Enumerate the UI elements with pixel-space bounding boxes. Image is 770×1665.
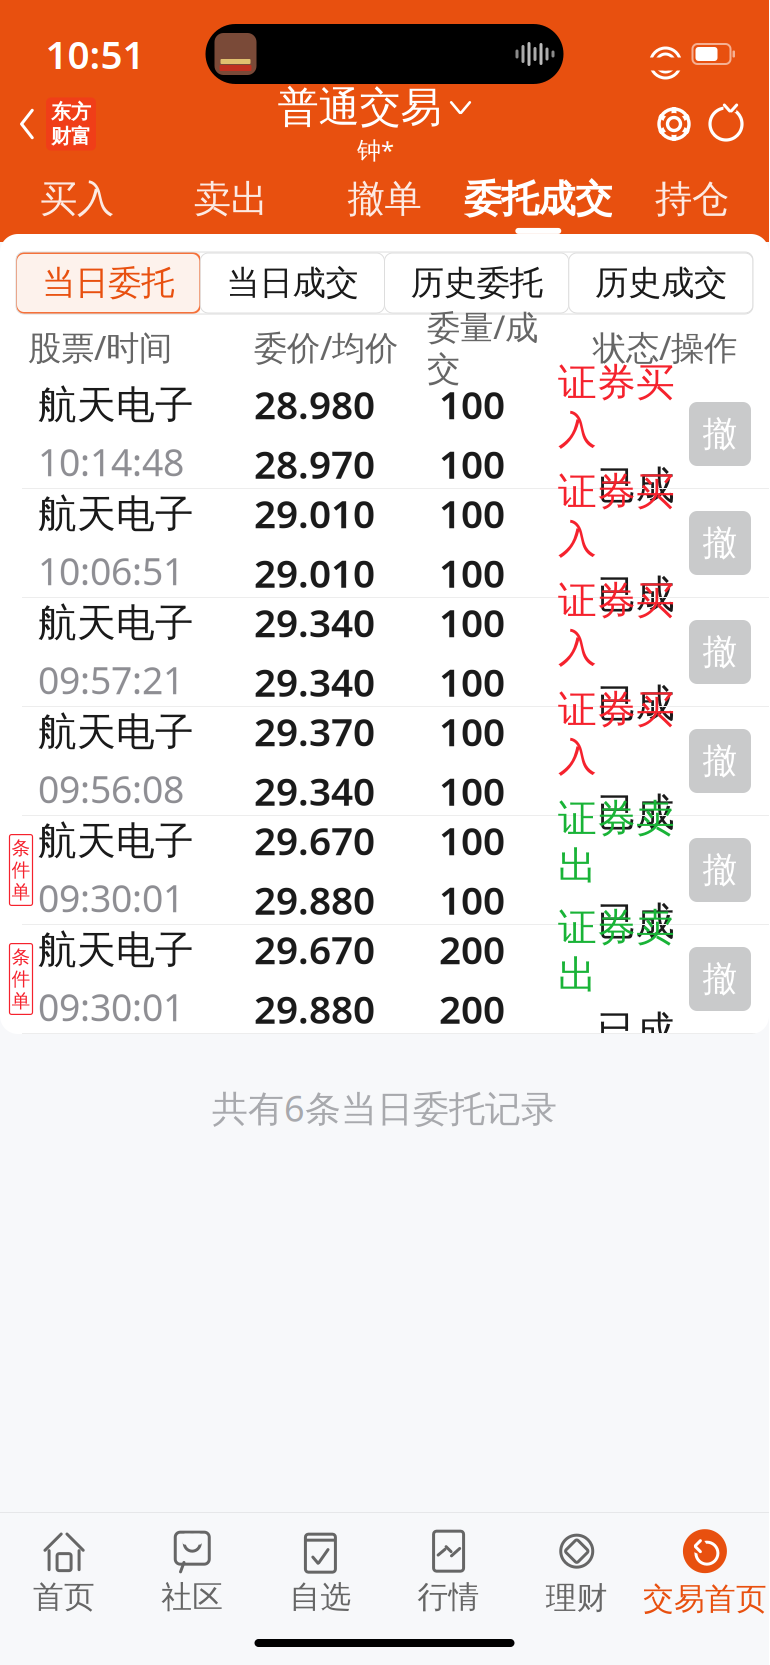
button[interactable]: 撤 bbox=[689, 729, 751, 793]
staticText: 已成 bbox=[597, 680, 675, 727]
button[interactable]: 航天电子 bbox=[0, 707, 769, 816]
button[interactable]: 普通交易 bbox=[269, 82, 481, 166]
staticText: 10:06:51 bbox=[38, 546, 184, 596]
staticText: 当日成交 bbox=[226, 262, 358, 303]
staticText: 东方 bbox=[51, 99, 91, 124]
staticText: 钟* bbox=[357, 134, 394, 166]
button[interactable]: 条 bbox=[0, 925, 769, 1034]
staticText: 29.670 bbox=[254, 815, 375, 866]
staticText: 共有6条当日委托记录 bbox=[212, 1084, 557, 1132]
staticText: 100 bbox=[439, 379, 505, 430]
button[interactable]: 撤 bbox=[689, 620, 751, 684]
button[interactable]: 撤 bbox=[689, 838, 751, 902]
staticText: 100 bbox=[439, 488, 505, 539]
staticText: 10:51 bbox=[45, 28, 144, 80]
staticText: 普通交易 bbox=[277, 82, 441, 133]
staticText: 已成 bbox=[597, 571, 675, 618]
staticText: 09:57:21 bbox=[38, 655, 184, 705]
staticText: 航天电子 bbox=[38, 599, 194, 647]
staticText: 状态/操作 bbox=[593, 325, 737, 369]
staticText: 持仓 bbox=[655, 176, 729, 222]
staticText: 撤 bbox=[702, 958, 737, 1000]
button[interactable]: 航天电子 bbox=[0, 380, 769, 489]
staticText: 财富 bbox=[51, 124, 91, 149]
staticText: 证券卖出 bbox=[558, 795, 675, 890]
staticText: 100 bbox=[439, 874, 505, 925]
staticText: 撤 bbox=[702, 413, 737, 455]
staticText: 已成 bbox=[597, 462, 675, 509]
button[interactable]: 航天电子 bbox=[0, 598, 769, 707]
staticText: 09:30:01 bbox=[38, 873, 184, 923]
staticText: 撤 bbox=[702, 631, 737, 673]
staticText: 件 bbox=[11, 858, 30, 881]
button[interactable]: 当日成交 bbox=[200, 253, 385, 313]
staticText: 29.370 bbox=[254, 706, 375, 757]
button[interactable]: 委托成交 bbox=[461, 168, 615, 238]
staticText: 100 bbox=[439, 765, 505, 816]
staticText: 100 bbox=[439, 706, 505, 757]
staticText: 已成 bbox=[597, 898, 675, 945]
button[interactable]: 历史成交 bbox=[569, 253, 753, 313]
staticText: 28.980 bbox=[254, 379, 375, 430]
button[interactable]: 撤 bbox=[689, 402, 751, 466]
button[interactable]: 自选 bbox=[256, 1530, 384, 1616]
staticText: 航天电子 bbox=[38, 708, 194, 756]
staticText: 证券买入 bbox=[558, 686, 675, 781]
staticText: 件 bbox=[11, 967, 30, 990]
button[interactable]: 撤 bbox=[689, 947, 751, 1011]
staticText: 历史委托 bbox=[411, 262, 543, 303]
staticText: 航天电子 bbox=[38, 817, 194, 865]
staticText: 100 bbox=[439, 547, 505, 598]
staticText: 29.880 bbox=[254, 983, 375, 1034]
staticText: 委价/均价 bbox=[254, 325, 398, 369]
staticText: 已成 bbox=[597, 789, 675, 836]
staticText: 29.340 bbox=[254, 597, 375, 648]
button[interactable]: 当日委托 bbox=[16, 253, 200, 313]
staticText: 航天电子 bbox=[38, 926, 194, 974]
staticText: 理财 bbox=[546, 1579, 608, 1617]
staticText: 撤 bbox=[702, 740, 737, 782]
staticText: 历史成交 bbox=[595, 262, 727, 303]
staticText: 29.880 bbox=[254, 874, 375, 925]
staticText: 已成 bbox=[597, 1007, 675, 1054]
staticText: 委托成交 bbox=[464, 176, 612, 222]
staticText: 交易首页 bbox=[643, 1580, 767, 1618]
staticText: 撤 bbox=[702, 522, 737, 564]
staticText: 200 bbox=[439, 924, 505, 975]
button[interactable]: 持仓 bbox=[615, 168, 769, 238]
button[interactable]: 卖出 bbox=[154, 168, 308, 238]
staticText: 100 bbox=[439, 597, 505, 648]
staticText: 行情 bbox=[418, 1578, 480, 1616]
staticText: 当日委托 bbox=[42, 262, 174, 303]
button[interactable]: 撤单 bbox=[308, 168, 461, 238]
staticText: 卖出 bbox=[194, 176, 268, 222]
button[interactable]: 返回 东方财富 bbox=[0, 91, 96, 156]
staticText: 29.010 bbox=[254, 488, 375, 539]
button[interactable]: 条 bbox=[0, 816, 769, 925]
staticText: 证券卖出 bbox=[558, 904, 675, 999]
staticText: 单 bbox=[11, 880, 30, 903]
staticText: 首页 bbox=[33, 1578, 95, 1616]
staticText: 09:30:01 bbox=[38, 982, 184, 1032]
staticText: 买入 bbox=[40, 176, 114, 222]
staticText: 10:14:48 bbox=[38, 437, 184, 487]
button[interactable]: 撤 bbox=[689, 511, 751, 575]
staticText: 股票/时间 bbox=[28, 325, 172, 369]
staticText: 证券买入 bbox=[558, 577, 675, 672]
button[interactable]: 首页 bbox=[0, 1530, 128, 1616]
staticText: 证券买入 bbox=[558, 468, 675, 563]
button[interactable]: 社区 bbox=[128, 1530, 256, 1616]
staticText: 29.010 bbox=[254, 547, 375, 598]
staticText: 自选 bbox=[289, 1578, 351, 1616]
staticText: 撤单 bbox=[347, 176, 421, 222]
button[interactable]: 设置 bbox=[655, 105, 693, 143]
button[interactable]: 航天电子 bbox=[0, 489, 769, 598]
button[interactable]: 行情 bbox=[384, 1530, 513, 1616]
staticText: 100 bbox=[439, 815, 505, 866]
staticText: 航天电子 bbox=[38, 490, 194, 538]
button[interactable]: 理财 bbox=[513, 1529, 641, 1617]
button[interactable]: 交易首页 bbox=[641, 1528, 769, 1618]
button[interactable]: 历史委托 bbox=[384, 253, 569, 313]
button[interactable]: 刷新 bbox=[707, 105, 745, 143]
button[interactable]: 买入 bbox=[0, 168, 154, 238]
